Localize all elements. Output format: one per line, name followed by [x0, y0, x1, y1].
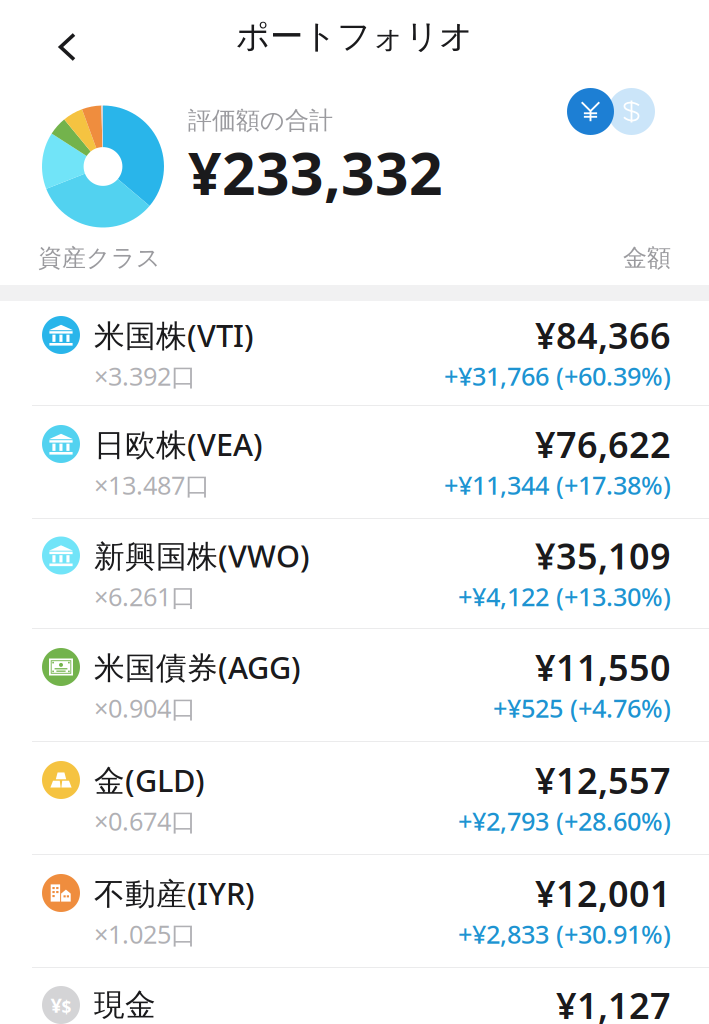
staticText: 不動産(IYR) [94, 873, 255, 913]
button[interactable]: 新興国株(VWO) [0, 519, 709, 628]
staticText: ×0.904口 [94, 691, 196, 725]
staticText: ¥233,332 [188, 133, 443, 211]
staticText: 金(GLD) [94, 760, 205, 800]
staticText: 米国株(VTI) [94, 315, 254, 355]
staticText: ポートフォリオ [236, 16, 473, 57]
staticText: +¥2,833 (+30.91%) [458, 917, 671, 951]
button[interactable]: 金(GLD) [0, 742, 709, 854]
staticText: ¥35,109 [535, 532, 671, 579]
staticText: ×13.487口 [94, 468, 210, 502]
staticText: +¥11,344 (+17.38%) [444, 468, 671, 502]
staticText: 日欧株(VEA) [94, 424, 263, 464]
staticText: 米国債券(AGG) [94, 647, 301, 687]
button[interactable]: 米国株(VTI) [0, 301, 709, 405]
staticText: ¥84,366 [535, 311, 671, 359]
staticText: 金額 [623, 243, 671, 273]
staticText: 現金 [94, 986, 156, 1024]
staticText: +¥2,793 (+28.60%) [458, 804, 671, 838]
staticText: ¥12,001 [535, 869, 671, 917]
button[interactable]: ¥ [0, 968, 709, 1016]
staticText: ×1.025口 [94, 917, 196, 951]
button[interactable]: 不動産(IYR) [0, 855, 709, 967]
staticText: ×0.674口 [94, 804, 196, 838]
button[interactable]: Currency [567, 88, 655, 135]
staticText: ¥1,127 [556, 981, 671, 1024]
staticText: 新興国株(VWO) [94, 535, 310, 576]
staticText: 評価額の合計 [188, 106, 333, 135]
button[interactable]: 日欧株(VEA) [0, 406, 709, 518]
staticText: $ [61, 995, 71, 1018]
button[interactable]: Back [0, 17, 95, 71]
staticText: +¥525 (+4.76%) [493, 691, 671, 725]
staticText: ×3.392口 [94, 359, 196, 393]
staticText: ¥76,622 [535, 420, 671, 468]
staticText: ¥12,557 [535, 756, 671, 804]
staticText: ¥ [50, 992, 61, 1018]
staticText: +¥31,766 (+60.39%) [444, 359, 671, 393]
staticText: ¥11,550 [535, 643, 671, 691]
staticText: +¥4,122 (+13.30%) [458, 580, 671, 613]
staticText: 資産クラス [38, 243, 161, 273]
staticText: ×6.261口 [94, 580, 196, 613]
button[interactable]: 米国債券(AGG) [0, 629, 709, 741]
